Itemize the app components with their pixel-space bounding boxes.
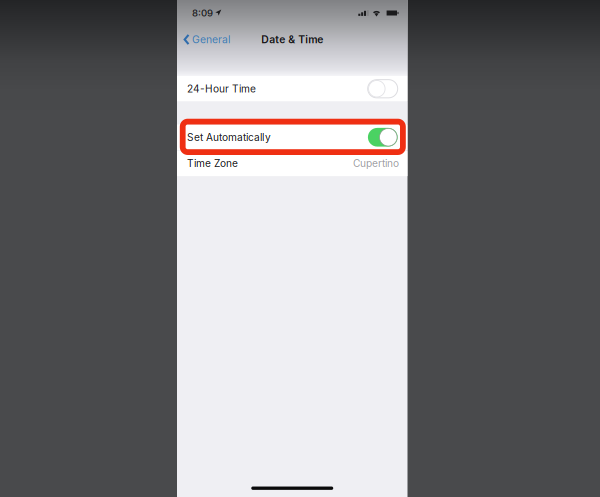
staticText: Time Zone bbox=[187, 157, 238, 169]
staticText: Date & Time bbox=[261, 33, 323, 46]
staticText: Set Automatically bbox=[187, 131, 271, 143]
staticText: 24-Hour Time bbox=[187, 83, 256, 95]
button[interactable]: General bbox=[177, 30, 231, 49]
staticText: General bbox=[192, 33, 231, 46]
button[interactable]: Time Zone bbox=[177, 151, 407, 176]
button[interactable]: 24-Hour Time bbox=[177, 76, 407, 101]
staticText: 8:09 bbox=[192, 7, 213, 19]
button[interactable]: Set Automatically bbox=[177, 124, 407, 150]
staticText: Cupertino bbox=[353, 157, 399, 169]
